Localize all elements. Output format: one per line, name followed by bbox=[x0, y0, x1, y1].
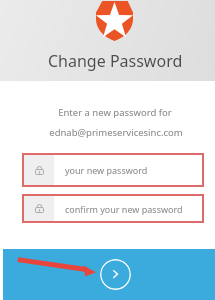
staticText: Enter a new password for bbox=[15, 106, 215, 119]
button[interactable]: your new password bbox=[22, 153, 204, 187]
button[interactable]: Continue bbox=[100, 259, 131, 290]
staticText: confirm your new password bbox=[65, 203, 183, 215]
button[interactable]: confirm your new password bbox=[22, 194, 204, 223]
staticText: ednab@primeservicesinc.com bbox=[17, 126, 215, 139]
staticText: Change Password bbox=[48, 50, 183, 72]
staticText: your new password bbox=[65, 164, 148, 176]
